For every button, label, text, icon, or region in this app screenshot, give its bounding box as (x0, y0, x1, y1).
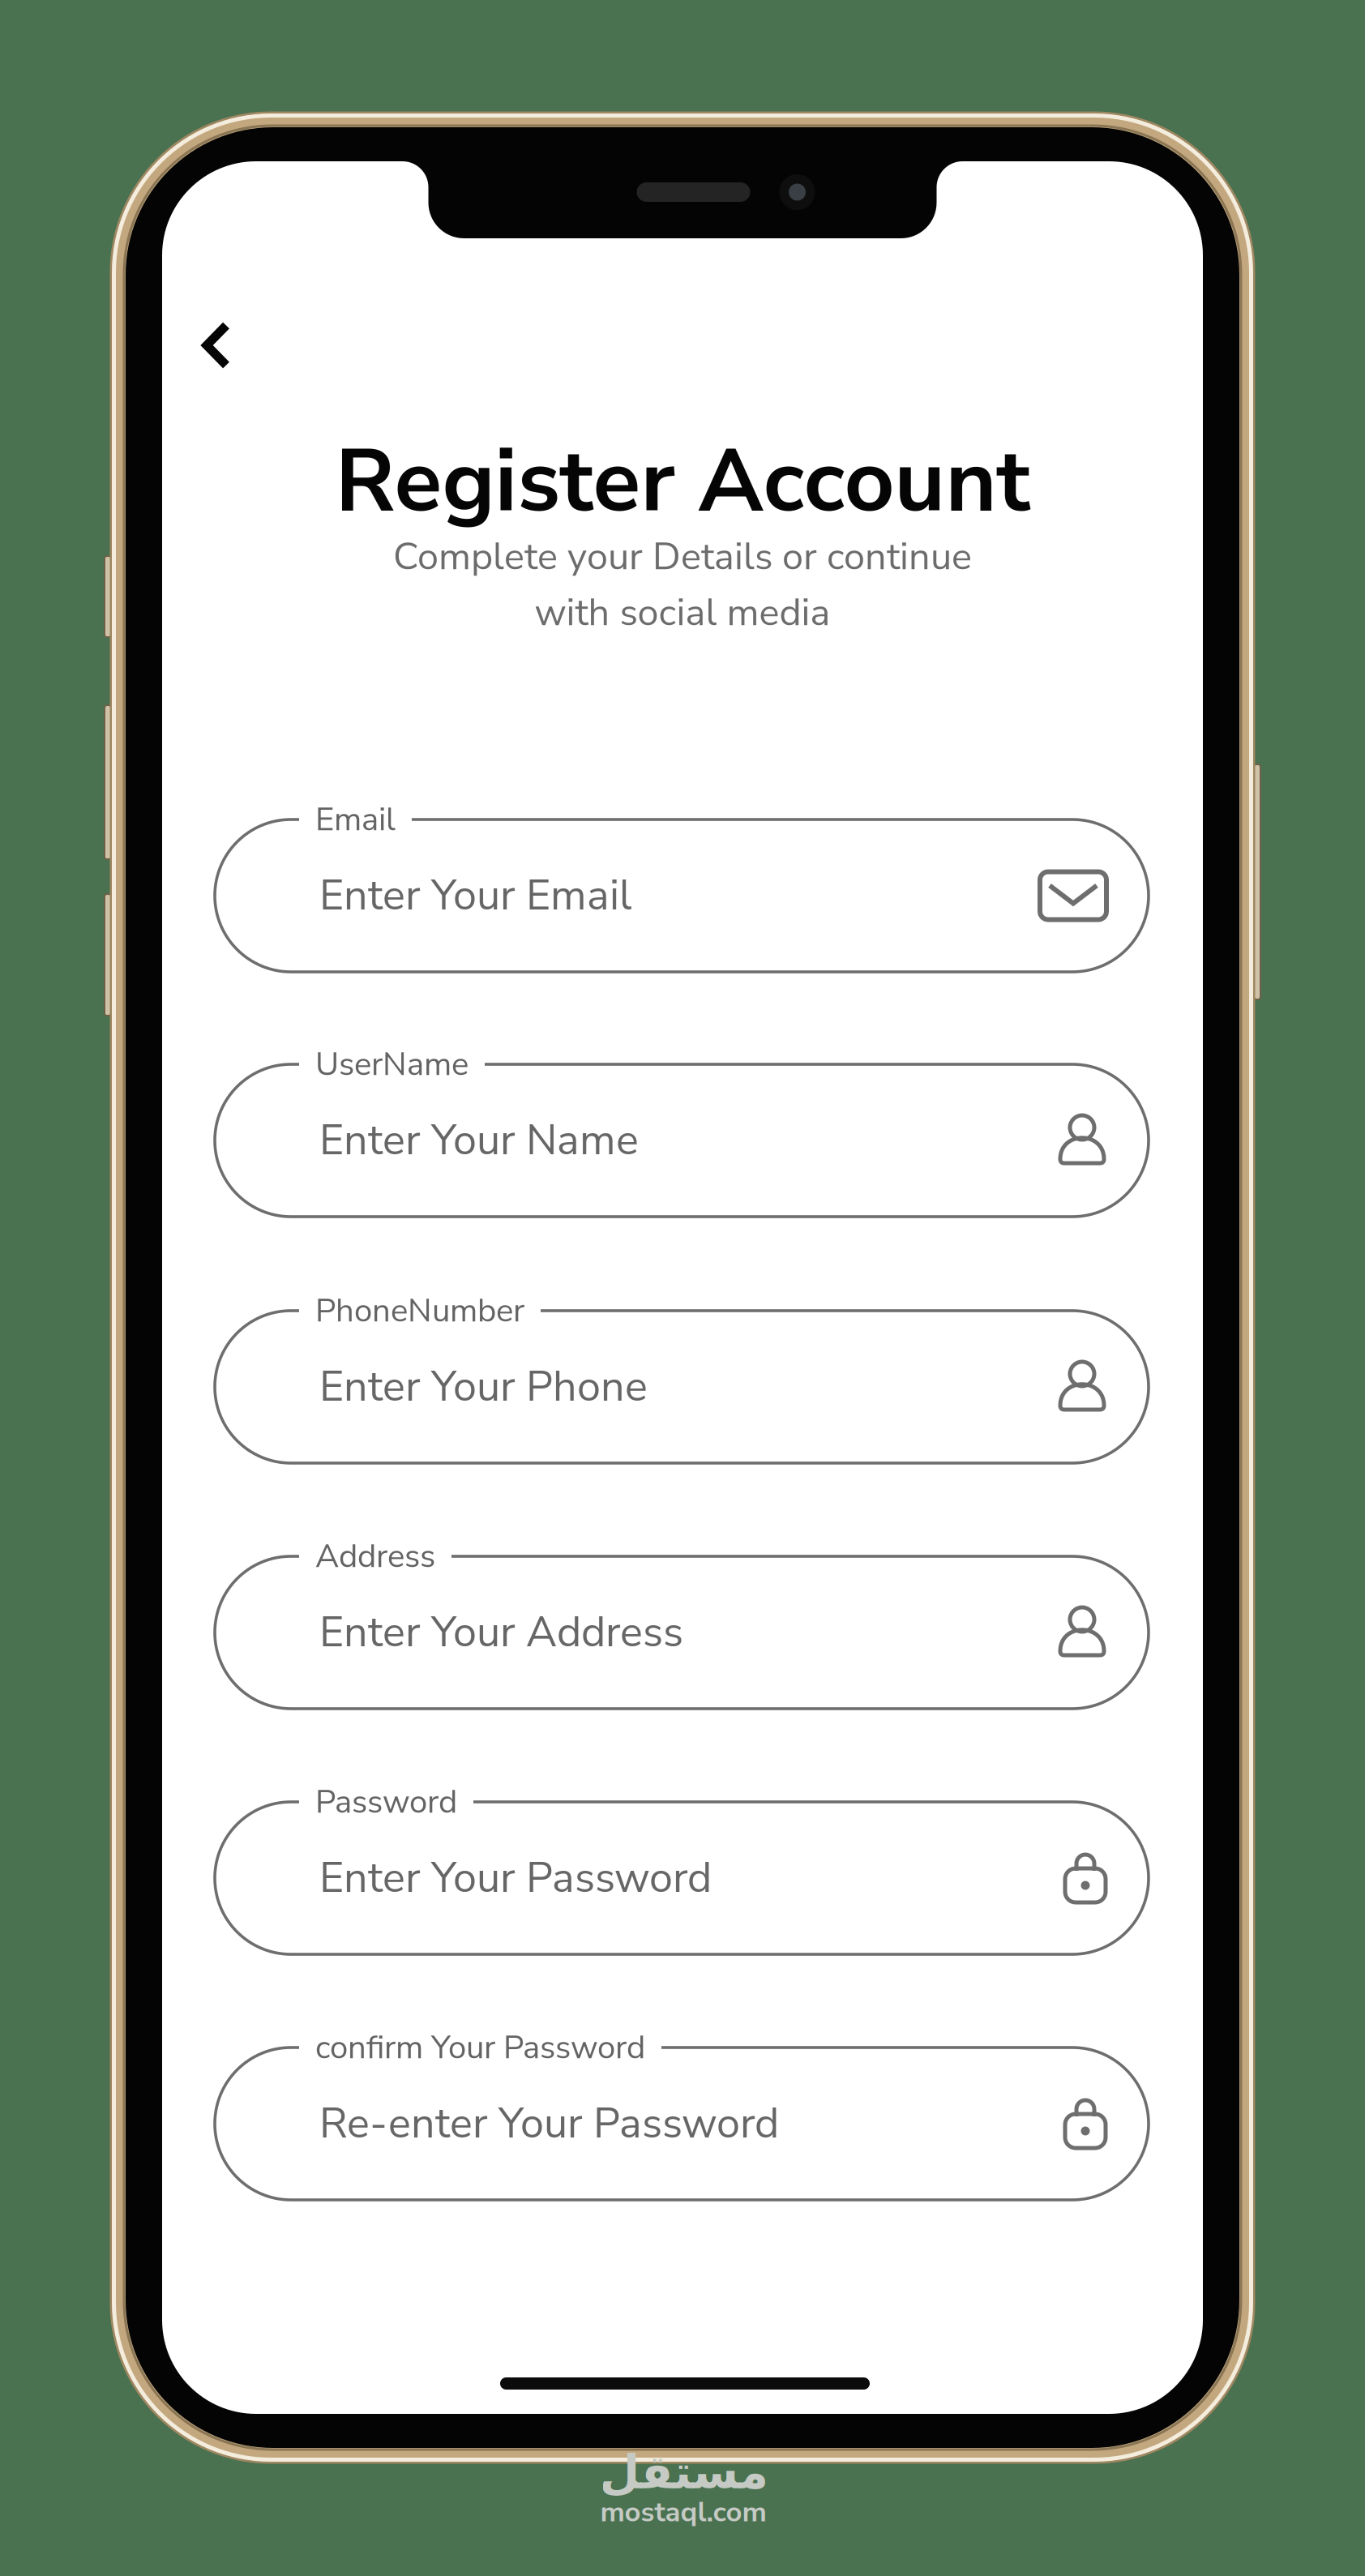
staticText: UserName (315, 1042, 469, 1086)
staticText: Address (315, 1534, 435, 1578)
staticText: Re-enter Your Password (319, 2095, 779, 2152)
staticText: Complete your Details or continue (393, 531, 972, 583)
button[interactable]: Back (160, 289, 273, 402)
button[interactable]: Enter Your Email (215, 819, 1149, 972)
staticText: with social media (535, 587, 830, 639)
staticText: Enter Your Name (319, 1112, 639, 1169)
button[interactable]: Re-enter Your Password (215, 2048, 1149, 2200)
button[interactable]: Enter Your Phone (215, 1311, 1149, 1463)
staticText: Enter Your Email (319, 867, 631, 924)
staticText: confirm Your Password (315, 2025, 645, 2070)
button[interactable]: Enter Your Password (215, 1802, 1149, 1954)
staticText: Password (315, 1780, 457, 1824)
staticText: Email (315, 797, 396, 842)
staticText: mostaql.com (600, 2493, 766, 2531)
staticText: مستقل (599, 2445, 768, 2499)
button[interactable]: Enter Your Address (215, 1556, 1149, 1709)
staticText: Register Account (335, 422, 1030, 541)
button[interactable]: Enter Your Name (215, 1064, 1149, 1217)
staticText: Enter Your Password (319, 1849, 712, 1907)
staticText: PhoneNumber (315, 1289, 524, 1333)
staticText: Enter Your Address (319, 1604, 683, 1661)
staticText: Enter Your Phone (319, 1358, 648, 1416)
